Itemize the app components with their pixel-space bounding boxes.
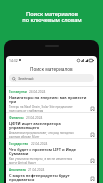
staticText: Теперь на Naaf Onsin, Solar Site предлаг… bbox=[9, 105, 73, 112]
button[interactable]: Аналитика bbox=[6, 164, 97, 183]
button[interactable]: Государство bbox=[6, 138, 97, 164]
staticText: Финансы bbox=[9, 116, 24, 120]
staticText: Поиск материалов bbox=[30, 66, 73, 72]
staticText: 14:32 bbox=[9, 58, 18, 63]
staticText: Аналитика bbox=[9, 168, 26, 172]
staticText: ЦФТИ ищет акселератора управляющего для … bbox=[9, 121, 89, 130]
staticText: Поиск материалов по ключевым словам bbox=[22, 10, 82, 24]
staticText: Аналитики предполагают, что ряд погодных… bbox=[9, 131, 74, 138]
button[interactable]: Госзакупки bbox=[6, 86, 97, 112]
staticText: Навигаторы на энергию: как провести три … bbox=[9, 95, 89, 104]
staticText: 22.04.2024 bbox=[31, 142, 48, 146]
staticText: Как уточнили эксперты, в весне изменения… bbox=[9, 157, 73, 164]
button[interactable]: Финансы bbox=[6, 112, 97, 138]
staticText: С марта нефтепродукты будут продаваться bbox=[9, 173, 89, 182]
staticText: Государство bbox=[9, 142, 29, 146]
staticText: Зелёный bbox=[18, 76, 34, 81]
staticText: 23.04.2024 bbox=[26, 116, 43, 120]
staticText: Что будет с проектом LIFT и Инде Суммами bbox=[9, 147, 89, 156]
staticText: 24.04.2024 bbox=[29, 90, 46, 94]
button[interactable]: Зелёный bbox=[9, 74, 94, 82]
staticText: 21.04.2024 bbox=[28, 168, 45, 172]
staticText: Госзакупки bbox=[9, 90, 27, 94]
